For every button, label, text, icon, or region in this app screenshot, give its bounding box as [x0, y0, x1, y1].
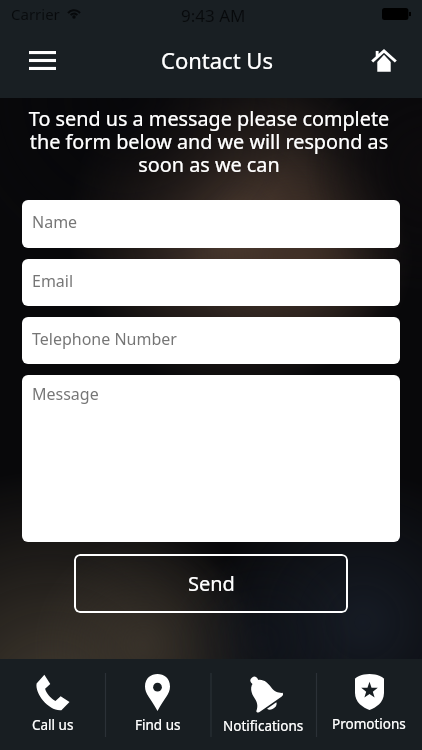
staticText: Telephone Number [32, 328, 177, 350]
staticText: Find us [135, 716, 181, 734]
button[interactable]: Call us [0, 659, 105, 750]
button[interactable]: Promotions [316, 659, 422, 750]
button[interactable]: Name [22, 200, 400, 248]
staticText: Name [32, 211, 78, 233]
staticText: Contact Us [161, 45, 273, 75]
button[interactable]: Telephone Number [22, 317, 400, 364]
button[interactable]: Message [22, 375, 400, 542]
button[interactable]: Find us [105, 659, 210, 750]
staticText: Send [188, 570, 235, 597]
button[interactable]: Home [362, 41, 406, 80]
staticText: Message [32, 383, 99, 405]
button[interactable]: Notifications [210, 659, 316, 750]
staticText: Email [32, 270, 74, 292]
staticText: To send us a message please complete the… [20, 105, 398, 178]
button[interactable]: Menu [20, 41, 64, 80]
staticText: Carrier [11, 4, 60, 24]
staticText: 9:43 AM [181, 4, 246, 27]
button[interactable]: Email [22, 259, 400, 306]
staticText: Promotions [332, 715, 406, 733]
button[interactable]: Send [74, 554, 348, 613]
staticText: Notifications [223, 717, 304, 735]
staticText: Call us [32, 716, 74, 734]
